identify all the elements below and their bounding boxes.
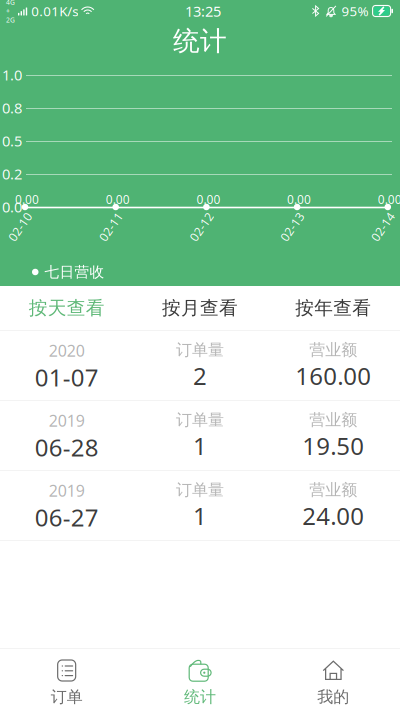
staticText: 2019 [49,480,85,501]
button[interactable]: 统计 [133,649,267,711]
staticText: 0.01K/s [31,2,78,20]
staticText: 02-14 [367,219,399,235]
staticText: 营业额 [309,410,357,430]
staticText: 0.2 [2,164,22,183]
button[interactable]: 按年查看 [267,286,400,330]
staticText: 我的 [317,687,349,707]
staticText: 0.00 [287,191,311,207]
staticText: 订单 [51,687,83,707]
button[interactable]: 我的 [267,649,400,711]
staticText: 0.00 [106,191,130,207]
staticText: 2 [193,360,207,392]
staticText: 24.00 [302,500,364,532]
staticText: 0.0 [2,197,22,216]
staticText: 19.50 [302,430,364,462]
staticText: 0.8 [2,98,22,117]
staticText: 95% [342,2,369,20]
button[interactable]: 2020 [0,331,400,400]
staticText: 02-11 [95,219,127,235]
staticText: 0.5 [2,131,22,150]
staticText: 4G+ [6,0,15,15]
staticText: 02-12 [186,219,218,235]
staticText: 0.00 [15,191,39,207]
staticText: 0.00 [196,191,220,207]
staticText: 02-10 [4,219,36,235]
staticText: 13:25 [185,1,221,21]
button[interactable]: 2019 [0,401,400,470]
staticText: 按月查看 [162,296,238,319]
staticText: 06-28 [35,431,99,463]
button[interactable]: 2019 [0,471,400,540]
staticText: 160.00 [295,360,371,392]
button[interactable]: 订单 [0,649,133,711]
staticText: 02-13 [277,219,309,235]
staticText: 订单量 [176,410,224,430]
staticText: 2019 [49,410,85,431]
staticText: 06-27 [35,501,99,533]
staticText: 统计 [173,25,227,57]
staticText: 按天查看 [29,296,105,319]
staticText: 2G [6,15,15,24]
staticText: 1.0 [2,65,22,84]
staticText: 七日营收 [44,263,104,281]
staticText: 营业额 [309,340,357,360]
staticText: 订单量 [176,480,224,500]
staticText: 统计 [184,687,216,707]
staticText: 1 [193,430,207,462]
staticText: 1 [193,500,207,532]
staticText: 订单量 [176,340,224,360]
staticText: 0.00 [378,191,400,207]
button[interactable]: 按月查看 [133,286,267,330]
staticText: 01-07 [35,361,99,393]
button[interactable]: 按天查看 [0,286,133,330]
staticText: 按年查看 [295,296,371,319]
staticText: 营业额 [309,480,357,500]
staticText: 2020 [49,340,85,361]
